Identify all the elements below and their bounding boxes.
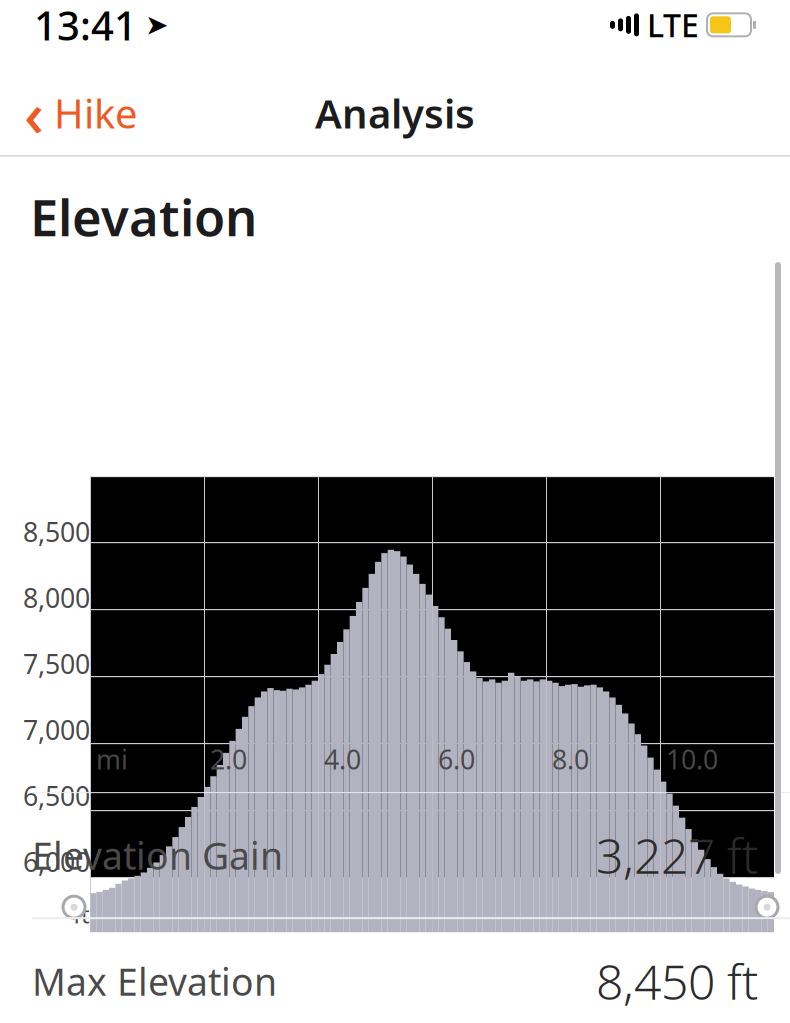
staticText: mi [96, 741, 128, 777]
staticText: 7,500 [23, 646, 90, 681]
staticText: ft [73, 898, 90, 930]
staticText: 13:41 [34, 0, 137, 51]
staticText: Elevation Gain [32, 830, 283, 880]
staticText: 7,000 [23, 712, 90, 747]
staticText: 6.0 [438, 741, 475, 777]
staticText: ‹ [24, 72, 44, 153]
staticText: 2.0 [210, 741, 247, 777]
staticText: 4.0 [324, 741, 361, 777]
staticText: 6,000 [23, 844, 90, 879]
staticText: Analysis [315, 86, 475, 139]
staticText: 10.0 [666, 741, 718, 777]
staticText: 8,500 [23, 514, 90, 549]
button[interactable]: ‹ [0, 64, 138, 161]
staticText: Elevation [30, 183, 257, 250]
staticText: Hike [54, 86, 138, 139]
staticText: ➤ [145, 9, 168, 41]
button[interactable]: Elevation Gain [0, 793, 790, 917]
staticText: 8.0 [552, 741, 589, 777]
staticText: 3,227 ft [596, 823, 758, 887]
staticText: 6,500 [23, 778, 90, 813]
staticText: 8,000 [23, 580, 90, 615]
button[interactable]: Max Elevation [0, 919, 790, 1023]
staticText: LTE [647, 4, 699, 46]
staticText: Max Elevation [32, 956, 277, 1006]
staticText: 8,450 ft [596, 949, 758, 1013]
